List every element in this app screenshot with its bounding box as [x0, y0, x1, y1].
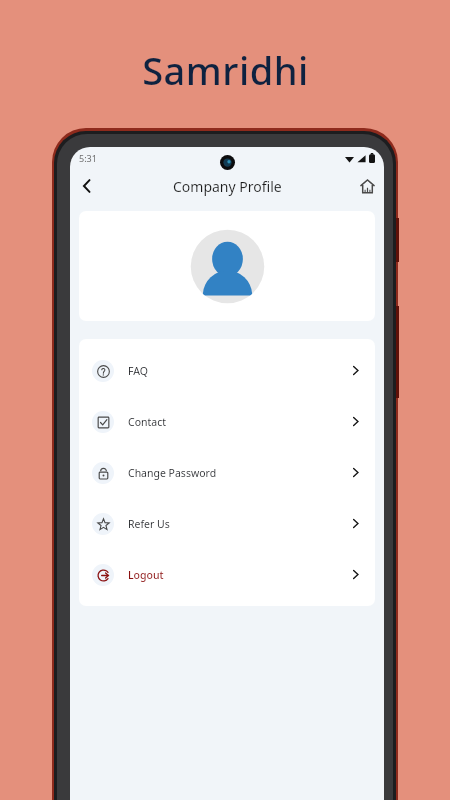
staticText: Logout	[128, 568, 164, 582]
button[interactable]: Contact	[79, 396, 375, 447]
staticText: FAQ	[128, 364, 148, 378]
button[interactable]: Logout	[79, 549, 375, 600]
button[interactable]: Refer Us	[79, 498, 375, 549]
button[interactable]: Change Password	[79, 447, 375, 498]
button[interactable]: FAQ	[79, 345, 375, 396]
staticText: Refer Us	[128, 517, 170, 531]
staticText: Company Profile	[173, 177, 282, 196]
button[interactable]: Profile photo	[79, 211, 375, 321]
button[interactable]: Back	[70, 169, 104, 203]
staticText: Change Password	[128, 466, 217, 480]
staticText: Samridhi	[142, 44, 309, 96]
staticText: Contact	[128, 415, 166, 429]
button[interactable]: Home	[350, 169, 384, 203]
staticText: 5:31	[79, 152, 97, 164]
